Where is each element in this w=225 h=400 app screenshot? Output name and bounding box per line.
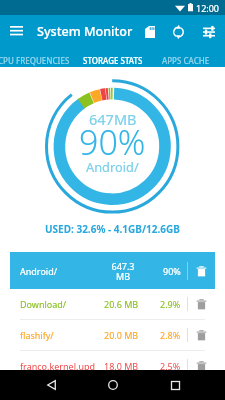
staticText: 20.6 MB bbox=[104, 298, 139, 310]
button[interactable]: Android/ bbox=[10, 252, 215, 289]
button[interactable]: Delete bbox=[194, 297, 208, 311]
button[interactable]: Back bbox=[36, 370, 66, 400]
button[interactable]: Refresh bbox=[164, 17, 193, 46]
button[interactable]: CPU FREQUENCIES bbox=[0, 47, 73, 67]
staticText: 2.8% bbox=[160, 329, 181, 341]
staticText: USED: 32.6% - 4.1GB/12.6GB bbox=[45, 222, 180, 236]
staticText: 90% bbox=[163, 265, 181, 277]
button[interactable]: Delete bbox=[194, 328, 208, 342]
button[interactable]: flashify/ bbox=[0, 320, 225, 350]
staticText: 2.9% bbox=[160, 298, 181, 310]
staticText: System Monitor bbox=[37, 23, 133, 40]
staticText: 20.0 MB bbox=[104, 329, 139, 341]
button[interactable]: Home bbox=[98, 370, 128, 400]
button[interactable]: Menu bbox=[0, 15, 32, 47]
staticText: CPU FREQUENCIES bbox=[0, 55, 70, 66]
staticText: Android/ bbox=[20, 265, 58, 277]
button[interactable]: Download/ bbox=[0, 289, 225, 319]
staticText: APPS CACHE bbox=[162, 55, 210, 66]
button[interactable]: SD card bbox=[135, 17, 164, 46]
staticText: franco.kernel.upd bbox=[20, 360, 96, 372]
button[interactable]: STORAGE STATS bbox=[73, 47, 152, 67]
staticText: 12:00 bbox=[196, 2, 220, 14]
staticText: STORAGE STATS bbox=[83, 55, 143, 66]
button[interactable]: Recents bbox=[160, 370, 190, 400]
staticText: 90% bbox=[79, 119, 146, 165]
button[interactable]: Delete bbox=[194, 264, 208, 278]
staticText: Android/ bbox=[86, 158, 139, 175]
staticText: 647.3 MB bbox=[110, 260, 136, 282]
staticText: 18.0 MB bbox=[104, 360, 139, 372]
staticText: 647MB bbox=[89, 109, 137, 129]
staticText: flashify/ bbox=[20, 329, 54, 341]
button[interactable]: APPS CACHE bbox=[152, 47, 219, 67]
button[interactable]: franco.kernel.upd bbox=[0, 351, 225, 381]
button[interactable]: Settings bbox=[193, 16, 224, 47]
staticText: Download/ bbox=[20, 298, 67, 310]
staticText: 2.5% bbox=[160, 360, 181, 372]
button[interactable]: Delete bbox=[194, 359, 208, 373]
